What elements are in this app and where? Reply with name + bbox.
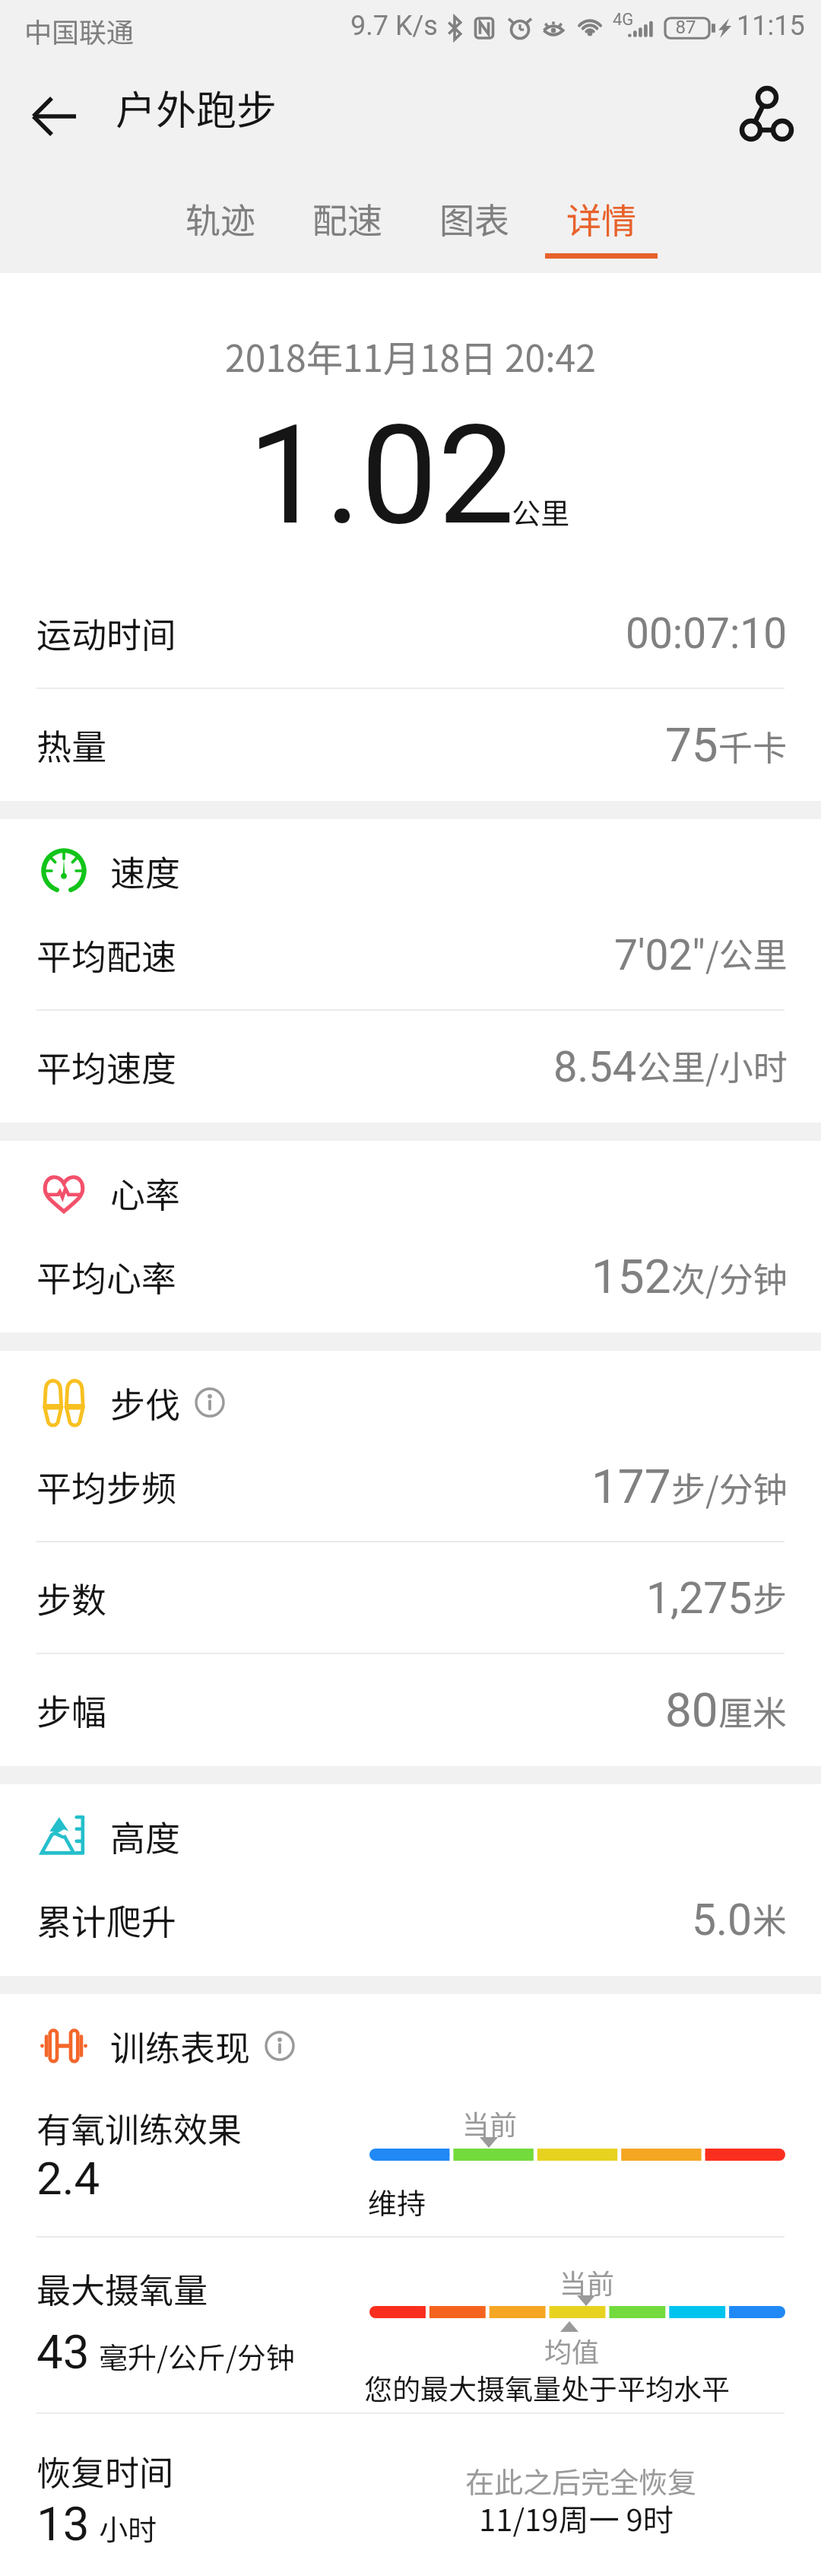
button[interactable]: 平均步频 xyxy=(0,1431,821,1542)
staticText: 热量 xyxy=(36,719,106,770)
staticText: 训练表现 xyxy=(110,2021,250,2072)
staticText: 心率 xyxy=(110,1167,180,1218)
staticText: 43 xyxy=(36,2324,90,2380)
staticText: 速度 xyxy=(110,846,180,897)
button[interactable]: 平均速度 xyxy=(0,1011,821,1123)
staticText: /公里 xyxy=(705,928,788,977)
staticText: 图表 xyxy=(439,193,509,244)
staticText: 平均步频 xyxy=(36,1461,176,1512)
button[interactable]: 配速 xyxy=(284,175,410,273)
button[interactable]: 轨迹 xyxy=(157,175,284,273)
staticText: 80 xyxy=(665,1682,718,1738)
button[interactable]: 图表 xyxy=(410,175,537,273)
staticText: 户外跑步 xyxy=(116,78,277,137)
staticText: 平均配速 xyxy=(36,929,176,980)
staticText: 累计爬升 xyxy=(36,1895,176,1945)
staticText: 厘米 xyxy=(718,1686,788,1736)
button[interactable]: 运动时间 xyxy=(0,577,821,689)
staticText: 当前 xyxy=(559,2262,615,2301)
button[interactable]: 平均配速 xyxy=(0,899,821,1011)
staticText: 中国联通 xyxy=(24,11,135,50)
staticText: 千卡 xyxy=(718,721,788,770)
staticText: 公里/小时 xyxy=(637,1040,788,1090)
staticText: 平均速度 xyxy=(36,1041,176,1092)
staticText: 详情 xyxy=(566,193,636,244)
button[interactable]: 有氧训练效果 xyxy=(0,2074,821,2236)
staticText: 00:07:10 xyxy=(626,609,788,658)
staticText: 步数 xyxy=(36,1573,106,1624)
staticText: 步/分钟 xyxy=(671,1463,788,1512)
staticText: 1,275 xyxy=(646,1573,753,1624)
button[interactable]: Back xyxy=(17,78,93,154)
staticText: 米 xyxy=(753,1894,788,1943)
staticText: 2018年11月18日 20:42 xyxy=(0,329,821,383)
staticText: 您的最大摄氧量处于平均水平 xyxy=(364,2367,730,2408)
staticText: 小时 xyxy=(99,2507,157,2549)
staticText: 152 xyxy=(591,1249,671,1304)
staticText: 7'02" xyxy=(614,931,705,980)
staticText: 177 xyxy=(591,1459,671,1514)
button[interactable]: 步幅 xyxy=(0,1654,821,1766)
button[interactable]: 恢复时间 xyxy=(0,2412,821,2574)
button[interactable]: 最大摄氧量 xyxy=(0,2236,821,2412)
staticText: 高度 xyxy=(110,1811,180,1862)
staticText: 在此之后完全恢复 xyxy=(465,2460,697,2501)
staticText: 恢复时间 xyxy=(36,2446,174,2495)
staticText: 公里 xyxy=(512,491,570,532)
staticText: 2.4 xyxy=(36,2152,100,2205)
button[interactable]: 平均心率 xyxy=(0,1221,821,1332)
staticText: 轨迹 xyxy=(185,193,255,244)
staticText: 8.54 xyxy=(553,1042,637,1092)
staticText: 次/分钟 xyxy=(671,1253,788,1302)
staticText: 运动时间 xyxy=(36,608,176,659)
staticText: 11:15 xyxy=(737,10,805,42)
staticText: 毫升/公斤/分钟 xyxy=(99,2335,295,2377)
button[interactable]: Share xyxy=(725,78,801,154)
staticText: 1.02 xyxy=(248,395,515,556)
staticText: 步幅 xyxy=(36,1685,106,1736)
staticText: 9.7 K/s xyxy=(350,10,438,42)
button[interactable]: 详情 xyxy=(537,175,664,273)
staticText: 13 xyxy=(36,2496,90,2552)
staticText: 步 xyxy=(753,1572,788,1622)
staticText: 11/19周一 9时 xyxy=(479,2496,674,2540)
button[interactable]: 累计爬升 xyxy=(0,1864,821,1976)
staticText: 5.0 xyxy=(692,1895,753,1945)
staticText: 4G xyxy=(613,10,634,30)
staticText: 维持 xyxy=(368,2181,426,2222)
staticText: 平均心率 xyxy=(36,1251,176,1302)
staticText: 87 xyxy=(665,17,706,38)
staticText: 75 xyxy=(665,717,718,773)
button[interactable]: 热量 xyxy=(0,689,821,801)
staticText: 步伐 xyxy=(110,1377,180,1428)
staticText: 最大摄氧量 xyxy=(36,2263,208,2313)
staticText: 有氧训练效果 xyxy=(36,2103,242,2152)
staticText: 当前 xyxy=(462,2103,518,2142)
staticText: 均值 xyxy=(544,2330,600,2370)
button[interactable]: 步数 xyxy=(0,1542,821,1654)
staticText: 配速 xyxy=(312,193,382,244)
